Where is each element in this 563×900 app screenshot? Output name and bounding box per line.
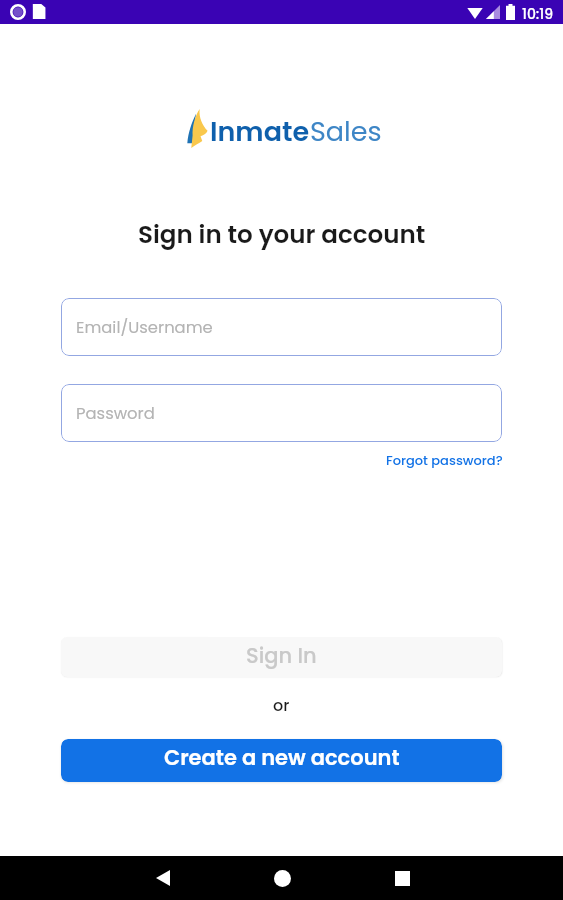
button[interactable]: Email/Username [61,298,502,356]
button[interactable]: Home [260,856,304,900]
button[interactable]: Forgot password? [386,451,503,469]
staticText: Sales [310,113,382,151]
staticText: Sign In [246,641,317,670]
staticText: Inmate [210,113,310,151]
button[interactable]: Password [61,384,502,442]
staticText: Sign in to your account [138,217,426,251]
button[interactable]: Back [141,856,185,900]
staticText: Email/Username [76,316,213,339]
staticText: Password [76,402,155,425]
button[interactable]: Recents [380,856,424,900]
button[interactable]: Sign In [61,637,502,677]
staticText: or [273,694,290,716]
staticText: 10:19 [522,4,554,24]
button[interactable]: Create a new account [61,739,502,782]
staticText: Create a new account [164,743,400,772]
